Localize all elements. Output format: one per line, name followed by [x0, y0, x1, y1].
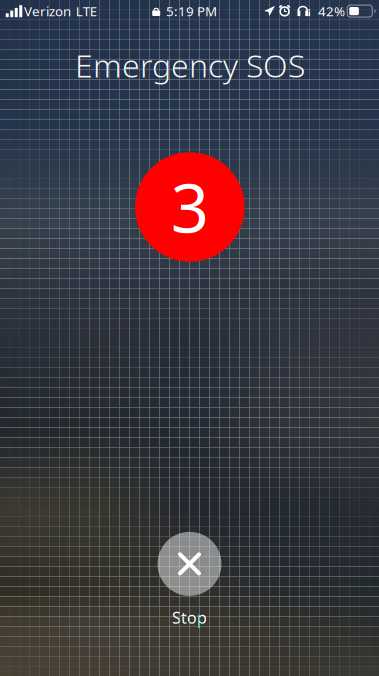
staticText: Emergency SOS [75, 44, 305, 86]
staticText: 3 [171, 163, 209, 251]
staticText: 42% [318, 2, 345, 20]
staticText: Stop [172, 607, 207, 628]
staticText: LTE [76, 2, 97, 20]
button[interactable]: Stop [157, 532, 221, 628]
staticText: Verizon [24, 2, 71, 20]
staticText: 5:19 PM [166, 2, 217, 20]
